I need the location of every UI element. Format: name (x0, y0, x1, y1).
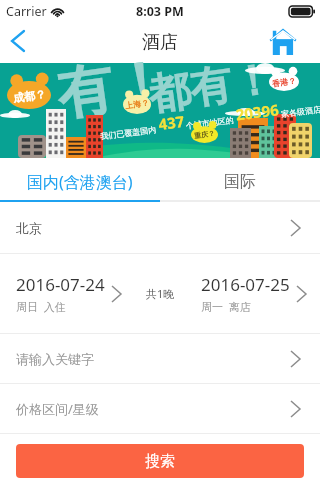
button[interactable]: Back (1, 26, 35, 60)
button[interactable]: 价格区间/星级 (0, 384, 320, 433)
button[interactable]: 北京 (0, 202, 320, 253)
button[interactable]: Home (266, 26, 300, 60)
staticText: 酒店 (142, 31, 178, 54)
staticText: 个城市地区的 (185, 115, 234, 131)
staticText: 20396 (235, 99, 280, 124)
staticText: 2016-07-24 (16, 273, 105, 296)
button[interactable]: 2016-07-25 (201, 273, 306, 314)
staticText: 重庆？ (193, 129, 215, 140)
staticText: 家各级酒店哦. (280, 102, 320, 119)
button[interactable]: 国内(含港澳台) (0, 158, 160, 200)
staticText: 请输入关键字 (16, 351, 94, 367)
staticText: 价格区间/星级 (16, 400, 99, 418)
other: Battery (289, 6, 315, 17)
staticText: 有！ (53, 46, 173, 131)
staticText: 8:03 PM (136, 3, 184, 20)
staticText: 北京 (16, 220, 42, 236)
staticText: 搜索 (145, 452, 175, 471)
button[interactable]: 2016-07-24 (16, 273, 121, 314)
button[interactable]: 国际 (160, 158, 320, 200)
staticText: 上海？ (124, 97, 150, 111)
staticText: 成都？ (12, 87, 47, 105)
staticText: 2016-07-25 (201, 273, 290, 296)
staticText: 周日 入住 (16, 299, 66, 314)
staticText: 香港？ (271, 75, 297, 89)
staticText: 437 (157, 111, 185, 134)
staticText: 都有！ (145, 52, 277, 122)
button[interactable]: 搜索 (16, 444, 304, 478)
staticText: Carrier (6, 3, 47, 20)
staticText: 我们已覆盖国内 (100, 124, 157, 141)
button[interactable]: 请输入关键字 (0, 334, 320, 383)
staticText: 国内(含港澳台) (27, 171, 133, 193)
staticText: 共1晚 (146, 286, 175, 301)
staticText: 周一 离店 (201, 299, 251, 314)
staticText: 国际 (224, 172, 256, 192)
